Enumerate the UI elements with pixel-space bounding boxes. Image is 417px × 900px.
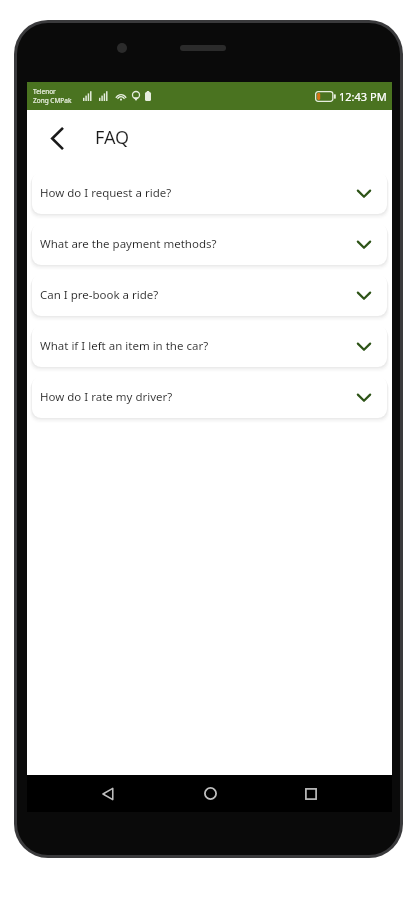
staticText: Can I pre-book a ride? [40, 287, 159, 303]
staticText: FAQ [95, 125, 130, 150]
staticText: How do I rate my driver? [40, 389, 173, 405]
staticText: Zong CMPak [33, 96, 72, 105]
button[interactable]: Home [190, 775, 230, 812]
button[interactable]: What are the payment methods? [32, 223, 387, 265]
button[interactable]: Recent apps [291, 775, 331, 812]
button[interactable]: How do I rate my driver? [32, 376, 387, 418]
staticText: What if I left an item in the car? [40, 338, 209, 354]
button[interactable]: Can I pre-book a ride? [32, 274, 387, 316]
button[interactable]: Back [37, 118, 77, 158]
staticText: 12:43 PM [339, 89, 387, 104]
button[interactable]: What if I left an item in the car? [32, 325, 387, 367]
button[interactable]: Back [88, 775, 128, 812]
staticText: What are the payment methods? [40, 236, 217, 252]
button[interactable]: How do I request a ride? [32, 172, 387, 214]
staticText: How do I request a ride? [40, 185, 172, 201]
staticText: Telenor [33, 87, 56, 96]
